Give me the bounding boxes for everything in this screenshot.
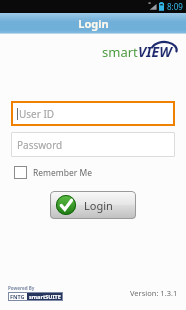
staticText: Login <box>84 198 113 213</box>
button[interactable]: User ID <box>11 101 175 126</box>
staticText: User ID <box>19 107 55 121</box>
staticText: VIEW <box>138 42 172 61</box>
button[interactable]: Password <box>11 132 175 157</box>
staticText: Version: 1.3.1 <box>130 288 178 298</box>
button[interactable]: Login <box>50 191 136 219</box>
staticText: smart <box>102 43 138 61</box>
staticText: Login <box>78 16 109 31</box>
staticText: Remember Me <box>33 167 93 179</box>
staticText: Powered By <box>8 285 35 291</box>
staticText: 8:09 <box>167 1 183 12</box>
staticText: FNTG <box>10 293 25 300</box>
button[interactable]: Remember Me <box>14 166 93 179</box>
staticText: smartSUITE <box>29 293 61 300</box>
staticText: Password <box>17 138 63 152</box>
